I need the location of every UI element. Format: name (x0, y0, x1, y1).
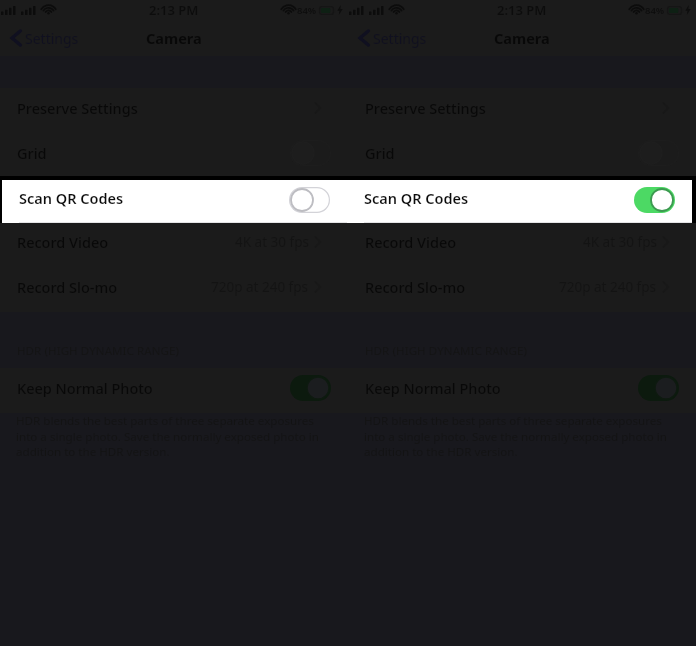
staticText: Record Slo-mo (365, 277, 466, 297)
staticText: Settings (373, 29, 427, 48)
staticText: Scan QR Codes (19, 188, 124, 208)
staticText: Keep Normal Photo (17, 378, 153, 398)
button[interactable]: Grid (348, 133, 696, 178)
staticText: Settings (25, 29, 79, 48)
staticText: Keep Normal Photo (365, 378, 501, 398)
staticText: 84% (645, 4, 665, 17)
staticText: Grid (17, 143, 47, 163)
staticText: Record Video (365, 232, 457, 252)
staticText: 2:13 PM (497, 1, 547, 19)
button[interactable]: Scan QR Codes (347, 180, 692, 223)
button[interactable]: Scan QR Codes disabled (289, 187, 330, 213)
staticText: Camera (146, 28, 202, 48)
button[interactable]: Keep Normal Photo (0, 368, 348, 413)
other: Back (10, 30, 22, 46)
button[interactable]: Scan QR Codes (2, 180, 347, 223)
other: Back (358, 30, 370, 46)
button[interactable]: Toggle (290, 375, 331, 401)
button[interactable]: Scan QR Codes enabled (634, 187, 675, 213)
staticText: Record Slo-mo (17, 277, 118, 297)
staticText: Camera (494, 28, 550, 48)
button[interactable]: Toggle (638, 375, 679, 401)
staticText: Scan QR Codes (364, 188, 469, 208)
button[interactable]: Grid (0, 133, 348, 178)
staticText: Preserve Settings (17, 98, 138, 118)
staticText: Grid (365, 143, 395, 163)
staticText: Record Video (17, 232, 109, 252)
staticText: Preserve Settings (365, 98, 486, 118)
button[interactable]: Keep Normal Photo (348, 368, 696, 413)
button[interactable]: Record Video (0, 222, 348, 267)
staticText: 84% (297, 4, 317, 17)
staticText: 2:13 PM (149, 1, 199, 19)
button[interactable]: Record Video (348, 222, 696, 267)
